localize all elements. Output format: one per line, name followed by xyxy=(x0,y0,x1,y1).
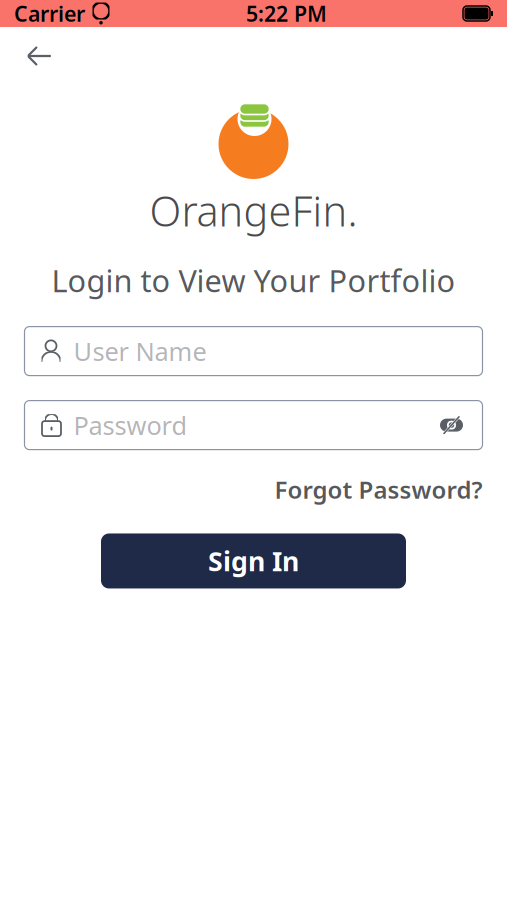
button[interactable]: Sign In xyxy=(101,533,406,588)
staticText: Sign In xyxy=(208,543,299,579)
staticText: User Name xyxy=(73,334,206,368)
button[interactable]: Forgot Password? xyxy=(274,470,482,509)
staticText: Password xyxy=(73,408,187,442)
staticText: Forgot Password? xyxy=(274,474,482,505)
staticText: Login to View Your Portfolio xyxy=(51,260,455,301)
button[interactable]: Password xyxy=(24,401,482,450)
button[interactable]: User Name xyxy=(24,327,482,376)
staticText: 5:22 PM xyxy=(246,0,327,28)
button[interactable]: Back xyxy=(14,31,66,81)
staticText: Carrier xyxy=(14,0,85,28)
staticText: OrangeFin. xyxy=(149,183,357,238)
